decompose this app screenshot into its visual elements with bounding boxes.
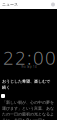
- staticText: 22:00: [3, 45, 56, 70]
- staticText: うに。今日も良い一日を。: [2, 118, 50, 120]
- staticText: 続く: [2, 85, 10, 90]
- staticText: Thu Sep 14: [21, 65, 37, 68]
- staticText: 「新しい朝が、心の中の夢を: [2, 100, 54, 105]
- staticText: おうじした希望、楽しむで: [2, 79, 50, 84]
- staticText: ニュース: [2, 2, 18, 7]
- staticText: 運びます」という言葉、あな: [2, 106, 54, 111]
- staticText: たの一日の最初の光となるよ: [2, 112, 54, 117]
- button[interactable]: More: [51, 2, 55, 6]
